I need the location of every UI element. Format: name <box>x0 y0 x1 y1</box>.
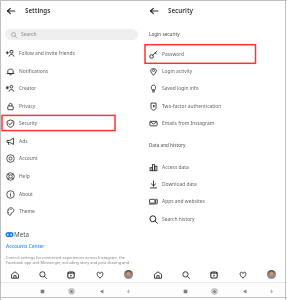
staticText: Emails from Instagram <box>162 120 215 127</box>
button[interactable]: Account <box>0 149 143 167</box>
button[interactable]: Likes <box>93 268 106 281</box>
button[interactable]: Help <box>0 167 143 185</box>
button[interactable]: Search <box>36 268 49 281</box>
staticText: Saved login info <box>162 85 199 92</box>
staticText: Login security <box>149 31 180 37</box>
button[interactable]: Follow and invite friends <box>0 44 143 62</box>
staticText: Creator <box>19 85 37 92</box>
staticText: Account <box>19 155 38 162</box>
button[interactable]: Home <box>8 268 21 281</box>
button[interactable]: Home <box>151 268 164 281</box>
button[interactable]: Creator <box>0 79 143 97</box>
button[interactable]: Password <box>143 45 287 63</box>
staticText: Settings <box>25 6 51 14</box>
button[interactable]: Back <box>239 286 249 296</box>
staticText: Two-factor authentication <box>162 103 222 110</box>
staticText: Theme <box>19 208 35 215</box>
staticText: Search history <box>162 216 195 223</box>
button[interactable]: Ads <box>0 132 143 150</box>
button[interactable]: About <box>0 185 143 203</box>
staticText: Facebook app and Messenger, including st… <box>6 260 130 265</box>
staticText: Security <box>168 6 194 14</box>
button[interactable]: Access data <box>143 158 287 176</box>
button[interactable]: Privacy <box>0 97 143 115</box>
staticText: Download data <box>162 181 197 188</box>
button[interactable]: Back <box>147 4 160 17</box>
button[interactable]: Download data <box>143 175 287 193</box>
button[interactable]: Profile <box>122 268 135 281</box>
button[interactable]: Hide keyboard <box>123 286 133 296</box>
button[interactable]: Recents <box>37 286 47 296</box>
staticText: Follow and invite friends <box>19 50 75 57</box>
button[interactable]: Hide keyboard <box>266 286 276 296</box>
button[interactable]: Emails from Instagram <box>143 114 287 132</box>
staticText: About <box>19 191 33 198</box>
button[interactable]: Theme <box>0 202 143 220</box>
button[interactable]: Accounts Center <box>6 243 45 250</box>
button[interactable]: Reels <box>207 268 220 281</box>
button[interactable]: Saved login info <box>143 79 287 97</box>
button[interactable]: Back <box>4 4 17 17</box>
staticText: Notifications <box>19 68 49 75</box>
button[interactable]: Search history <box>143 210 287 228</box>
staticText: Privacy <box>19 103 36 110</box>
button[interactable]: Two-factor authentication <box>143 97 287 115</box>
staticText: Meta <box>14 230 30 238</box>
button[interactable]: Apps and websites <box>143 192 287 210</box>
button[interactable]: Security <box>0 114 143 132</box>
staticText: Password <box>162 51 185 58</box>
staticText: Apps and websites <box>162 198 205 205</box>
button[interactable]: Login activity <box>143 62 287 80</box>
button[interactable]: Home <box>66 286 76 296</box>
staticText: Search <box>21 31 37 38</box>
button[interactable]: Recents <box>180 286 190 296</box>
staticText: Ads <box>19 138 28 145</box>
staticText: Help <box>19 173 30 180</box>
button[interactable]: Likes <box>236 268 249 281</box>
button[interactable]: Home <box>209 286 219 296</box>
staticText: Control settings for connected experienc… <box>6 255 126 260</box>
staticText: Data and history <box>149 142 186 148</box>
staticText: Access data <box>162 164 189 171</box>
button[interactable]: Search <box>5 29 138 40</box>
button[interactable]: Notifications <box>0 62 143 80</box>
button[interactable]: Reels <box>64 268 77 281</box>
staticText: Login activity <box>162 68 193 75</box>
button[interactable]: Back <box>96 286 106 296</box>
button[interactable]: Search <box>179 268 192 281</box>
staticText: Security <box>19 120 38 127</box>
button[interactable]: Profile <box>265 268 278 281</box>
